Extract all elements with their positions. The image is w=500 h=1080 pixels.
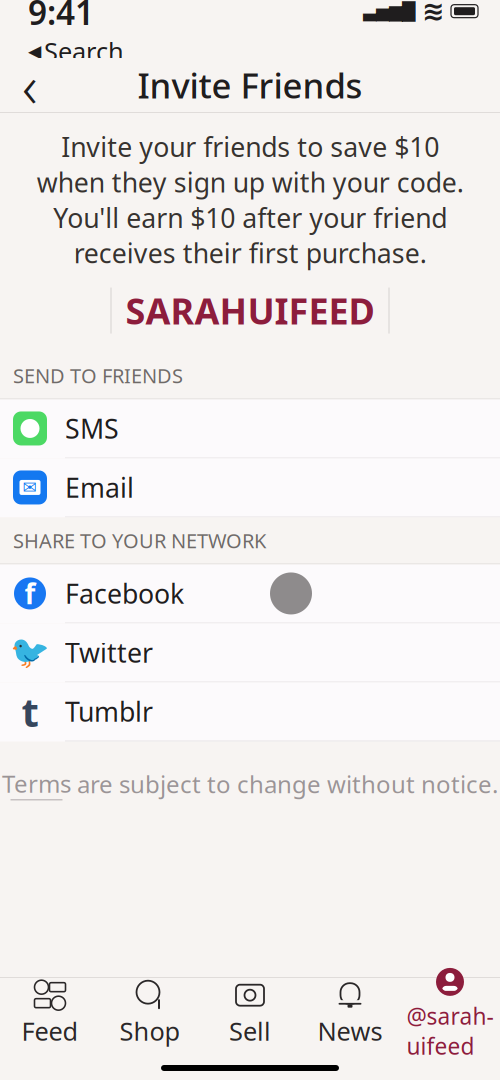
button[interactable]: Sell — [200, 978, 300, 1050]
button[interactable]: Back — [0, 58, 60, 112]
staticText: @sarahuifeed — [406, 1001, 493, 1061]
button[interactable]: Feed — [0, 978, 100, 1050]
staticText: Email — [65, 470, 134, 505]
button[interactable]: t — [0, 682, 500, 741]
button[interactable]: Shop — [100, 978, 200, 1050]
staticText: SARAHUIFEED — [125, 287, 374, 334]
staticText: 9:41 — [28, 0, 94, 34]
staticText: News — [317, 1014, 382, 1048]
staticText: Terms — [2, 767, 71, 799]
staticText: f — [24, 575, 35, 612]
staticText: Facebook — [65, 576, 184, 611]
button[interactable]: 🐦 — [0, 623, 500, 682]
staticText: ‹ — [22, 46, 38, 124]
staticText: ✉ — [22, 478, 37, 497]
staticText: Search — [44, 34, 124, 68]
staticText: SHARE TO YOUR NETWORK — [13, 527, 266, 554]
button[interactable]: @sarahuifeed — [400, 978, 500, 1050]
staticText: SEND TO FRIENDS — [13, 362, 183, 389]
staticText: Invite Friends — [137, 62, 362, 108]
button[interactable]: Terms — [2, 767, 71, 800]
button[interactable]: f — [0, 564, 500, 623]
button[interactable]: News — [300, 978, 400, 1050]
staticText: 🐦 — [10, 634, 50, 671]
staticText: t — [21, 685, 38, 738]
button[interactable]: ✉ — [0, 458, 500, 517]
staticText: ≋ — [422, 0, 444, 26]
staticText: Invite your friends to save $10 when the… — [36, 129, 463, 271]
button[interactable]: SMS — [0, 399, 500, 458]
staticText: Twitter — [65, 635, 153, 670]
staticText: are subject to change without notice. — [71, 768, 498, 800]
staticText: SMS — [65, 411, 119, 446]
staticText: ▃▅▆█ — [363, 1, 415, 21]
staticText: ◀ — [28, 41, 41, 61]
staticText: Tumblr — [65, 694, 153, 729]
staticText: Feed — [21, 1014, 78, 1048]
staticText: Sell — [229, 1014, 271, 1048]
staticText: Shop — [119, 1014, 180, 1048]
